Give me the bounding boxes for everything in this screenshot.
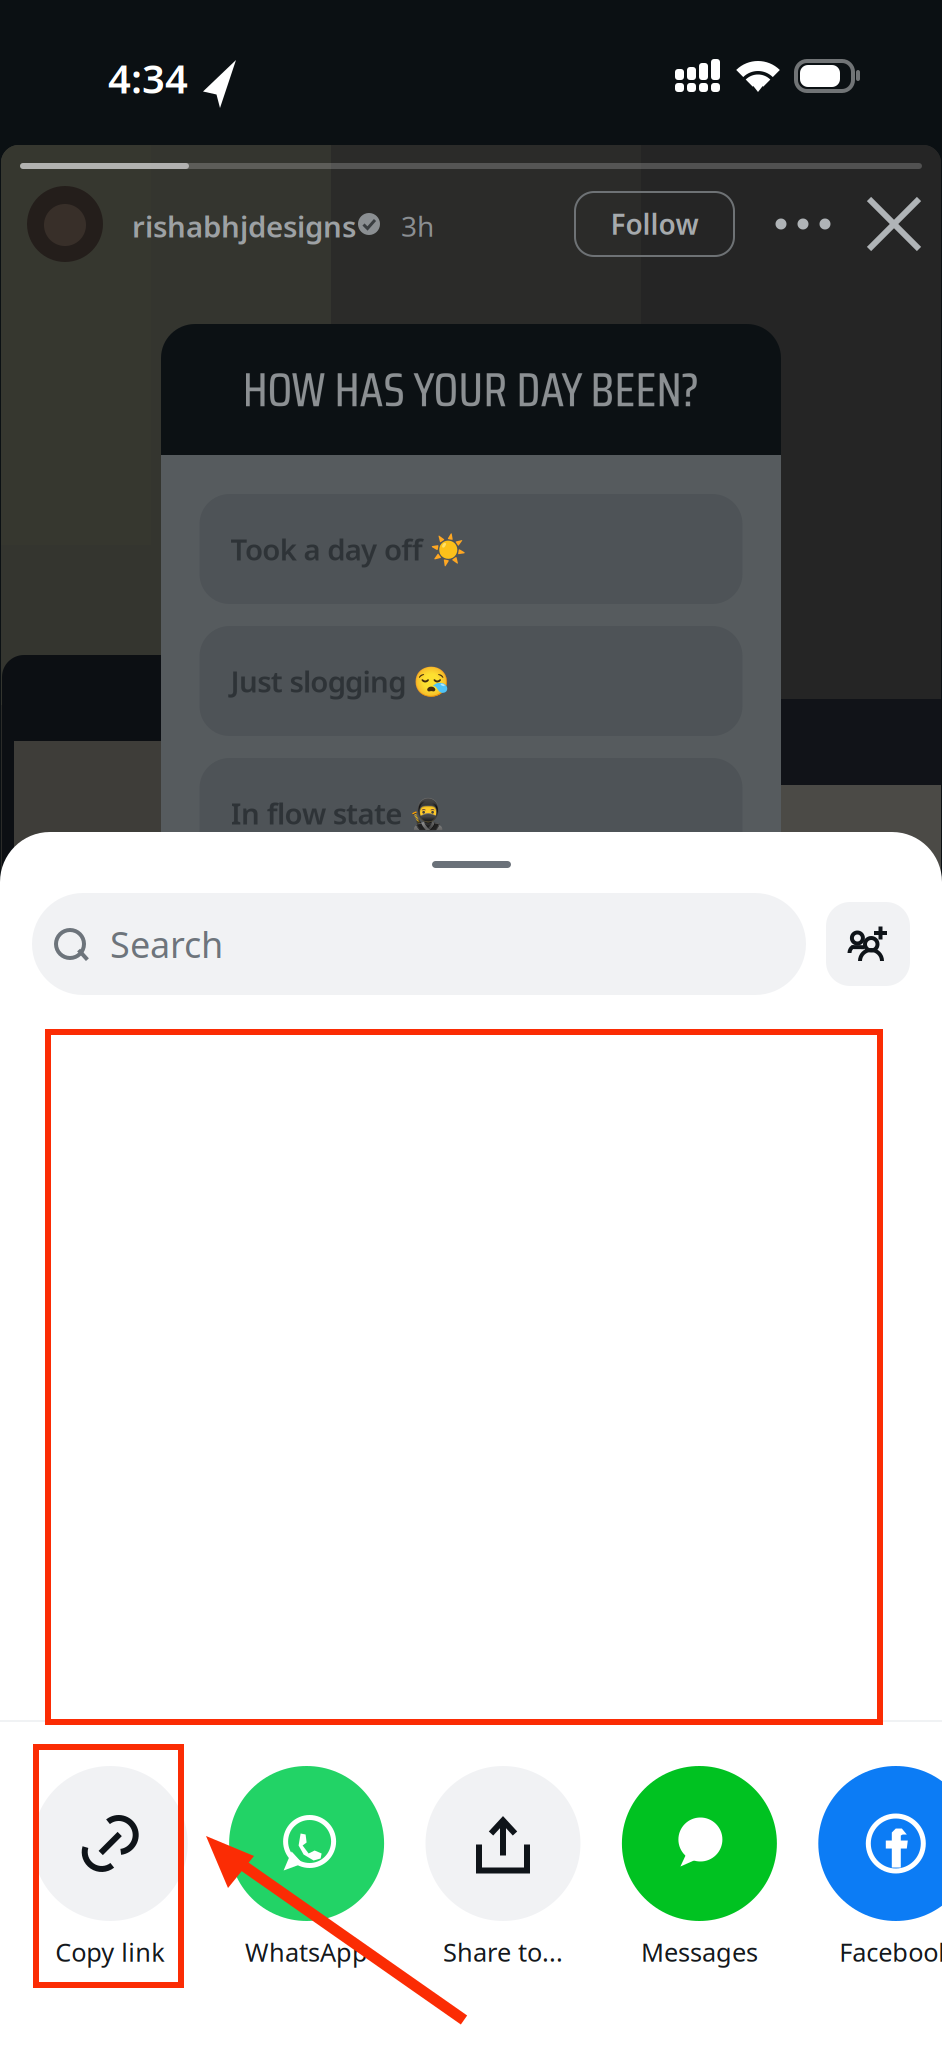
staticText: Just slogging 😪 bbox=[230, 661, 450, 700]
staticText: WhatsApp bbox=[245, 1935, 368, 1969]
button[interactable]: Messages bbox=[601, 1766, 798, 2004]
button[interactable]: Close story bbox=[866, 196, 922, 252]
staticText: Search bbox=[110, 920, 223, 968]
button[interactable]: Copy link bbox=[12, 1766, 208, 2004]
staticText: Share to... bbox=[443, 1935, 563, 1969]
button[interactable]: Facebook bbox=[798, 1766, 942, 2004]
button[interactable]: WhatsApp bbox=[208, 1766, 405, 2004]
button[interactable]: Search bbox=[32, 893, 806, 995]
staticText: HOW HAS YOUR DAY BEEN? bbox=[242, 352, 699, 427]
staticText: In flow state 🥷 bbox=[230, 793, 446, 832]
button[interactable]: Follow bbox=[575, 192, 734, 256]
staticText: rishabhjdesigns bbox=[132, 206, 356, 245]
button[interactable]: Add people bbox=[826, 902, 910, 986]
staticText: 4:34 bbox=[108, 51, 188, 104]
staticText: Took a day off ☀️ bbox=[230, 529, 466, 568]
staticText: Follow bbox=[610, 205, 698, 243]
button[interactable]: Share to... bbox=[405, 1766, 601, 2004]
staticText: Messages bbox=[641, 1935, 758, 1969]
staticText: Copy link bbox=[55, 1935, 165, 1969]
staticText: 3h bbox=[401, 207, 434, 245]
staticText: Facebook bbox=[839, 1935, 942, 1969]
button[interactable]: More options bbox=[768, 196, 838, 252]
